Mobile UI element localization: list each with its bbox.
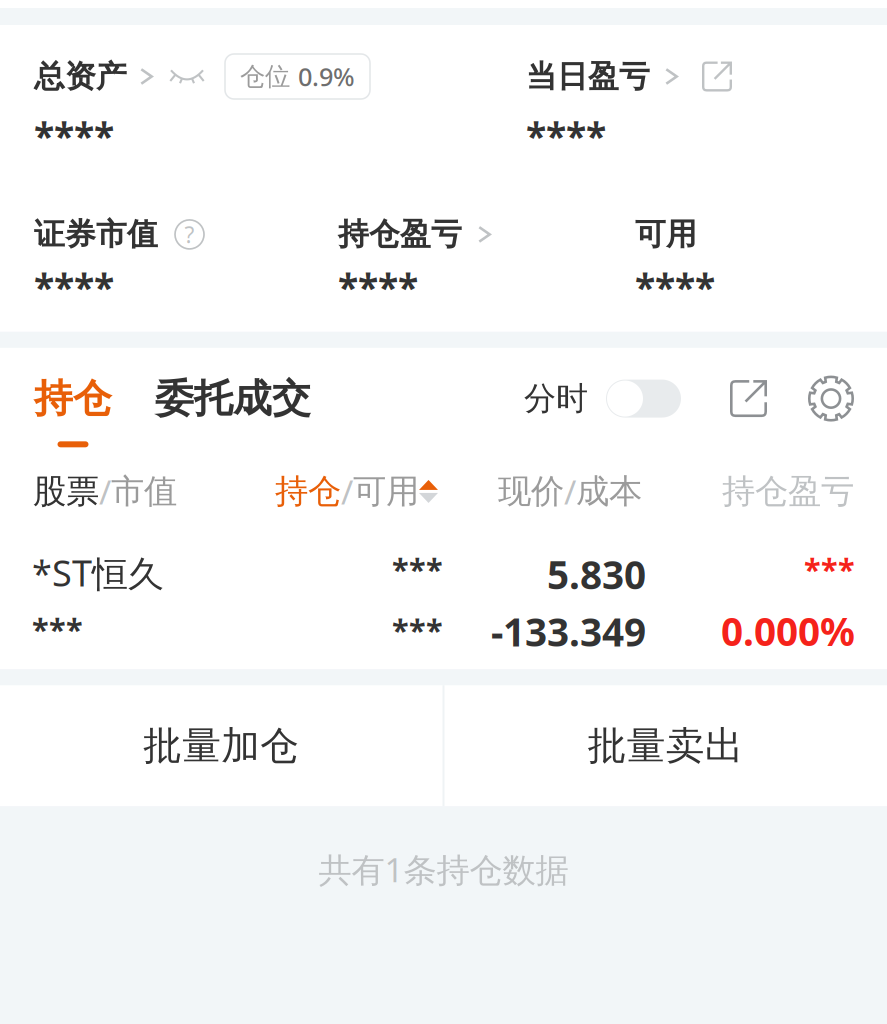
staticText: **** — [338, 262, 418, 312]
staticText: 股票 — [33, 471, 99, 512]
staticText: 持仓盈亏 — [338, 216, 462, 253]
staticText: 持仓 — [275, 471, 341, 512]
staticText: 总资产 — [34, 58, 127, 95]
button[interactable]: 持仓盈亏 — [338, 216, 491, 253]
staticText: 持仓 — [34, 375, 112, 422]
staticText: *** — [804, 549, 855, 589]
button[interactable]: 委托成交 — [155, 375, 311, 447]
staticText: 可用 — [353, 471, 419, 512]
staticText: 共有1条持仓数据 — [318, 847, 568, 892]
staticText: 批量加仓 — [143, 722, 299, 769]
button[interactable]: *ST恒久 — [0, 514, 887, 669]
staticText: *** — [392, 549, 443, 589]
staticText: 可用 — [635, 216, 697, 253]
staticText: **** — [635, 262, 715, 312]
button[interactable]: 总资产 — [34, 54, 370, 99]
staticText: 成本 — [576, 471, 642, 512]
staticText: 仓位 — [240, 61, 298, 92]
staticText: 持仓盈亏 — [722, 471, 854, 512]
staticText: / — [99, 469, 111, 514]
button[interactable]: 批量加仓 — [0, 685, 442, 806]
button[interactable]: 设置 — [808, 376, 854, 422]
staticText: -133.349 — [491, 606, 646, 657]
button[interactable]: 当日盈亏 — [526, 54, 732, 99]
staticText: **** — [34, 262, 114, 312]
button[interactable]: 批量卖出 — [444, 685, 887, 806]
staticText: 当日盈亏 — [526, 58, 650, 95]
staticText: 委托成交 — [155, 375, 311, 422]
staticText: 证券市值 — [34, 216, 158, 253]
button[interactable]: 持仓 — [275, 469, 498, 514]
staticText: *** — [32, 609, 83, 649]
button[interactable]: 持仓 — [34, 375, 112, 447]
staticText: **** — [526, 111, 606, 161]
staticText: ? — [184, 219, 194, 249]
button[interactable]: 分享 — [730, 380, 767, 417]
button[interactable]: 分时开关 — [606, 380, 681, 418]
staticText: 批量卖出 — [588, 722, 744, 769]
button[interactable]: 证券市值 — [34, 216, 204, 253]
staticText: *** — [392, 609, 443, 650]
staticText: / — [564, 469, 576, 514]
staticText: / — [341, 469, 353, 514]
staticText: 0.000% — [721, 605, 855, 657]
staticText: 分时 — [524, 379, 588, 418]
staticText: 5.830 — [547, 549, 646, 600]
staticText: 现价 — [498, 471, 564, 512]
staticText: *ST恒久 — [32, 549, 164, 597]
staticText: 0.9% — [298, 60, 355, 93]
staticText: **** — [34, 111, 114, 161]
staticText: 市值 — [111, 471, 177, 512]
